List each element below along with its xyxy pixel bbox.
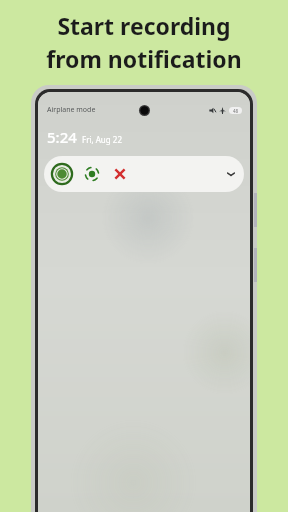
staticText: from notification [46,43,242,74]
staticText: 48 [233,108,239,114]
staticText: Fri, Aug 22 [82,134,122,145]
staticText: Airplane mode [47,105,96,115]
staticText: 5:24 [47,127,77,147]
staticText: Start recording [57,10,231,41]
button[interactable]: Expand [225,168,237,180]
button[interactable]: App icon [51,163,73,185]
button[interactable]: Record [84,166,100,182]
button[interactable]: App icon [44,156,244,192]
button[interactable]: Stop [113,167,127,181]
